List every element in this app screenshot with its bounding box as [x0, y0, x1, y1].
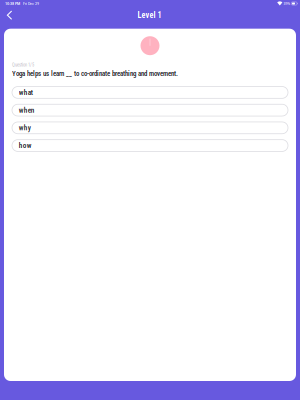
- staticText: how: [19, 141, 32, 150]
- staticText: what: [19, 88, 33, 97]
- staticText: when: [19, 106, 35, 114]
- staticText: Fri Dec 29: [20, 1, 39, 6]
- staticText: Level 1: [137, 10, 161, 20]
- staticText: Yoga helps us learn __ to co-ordinate br…: [12, 69, 178, 78]
- staticText: 39%: [282, 1, 291, 6]
- button[interactable]: how: [12, 140, 288, 151]
- button[interactable]: when: [12, 104, 288, 116]
- staticText: Question 1/5: [12, 62, 34, 67]
- button[interactable]: what: [12, 86, 288, 98]
- button[interactable]: why: [12, 122, 288, 134]
- staticText: why: [19, 123, 31, 132]
- staticText: 10:38 PM: [5, 1, 20, 6]
- button[interactable]: Back: [4, 9, 15, 21]
